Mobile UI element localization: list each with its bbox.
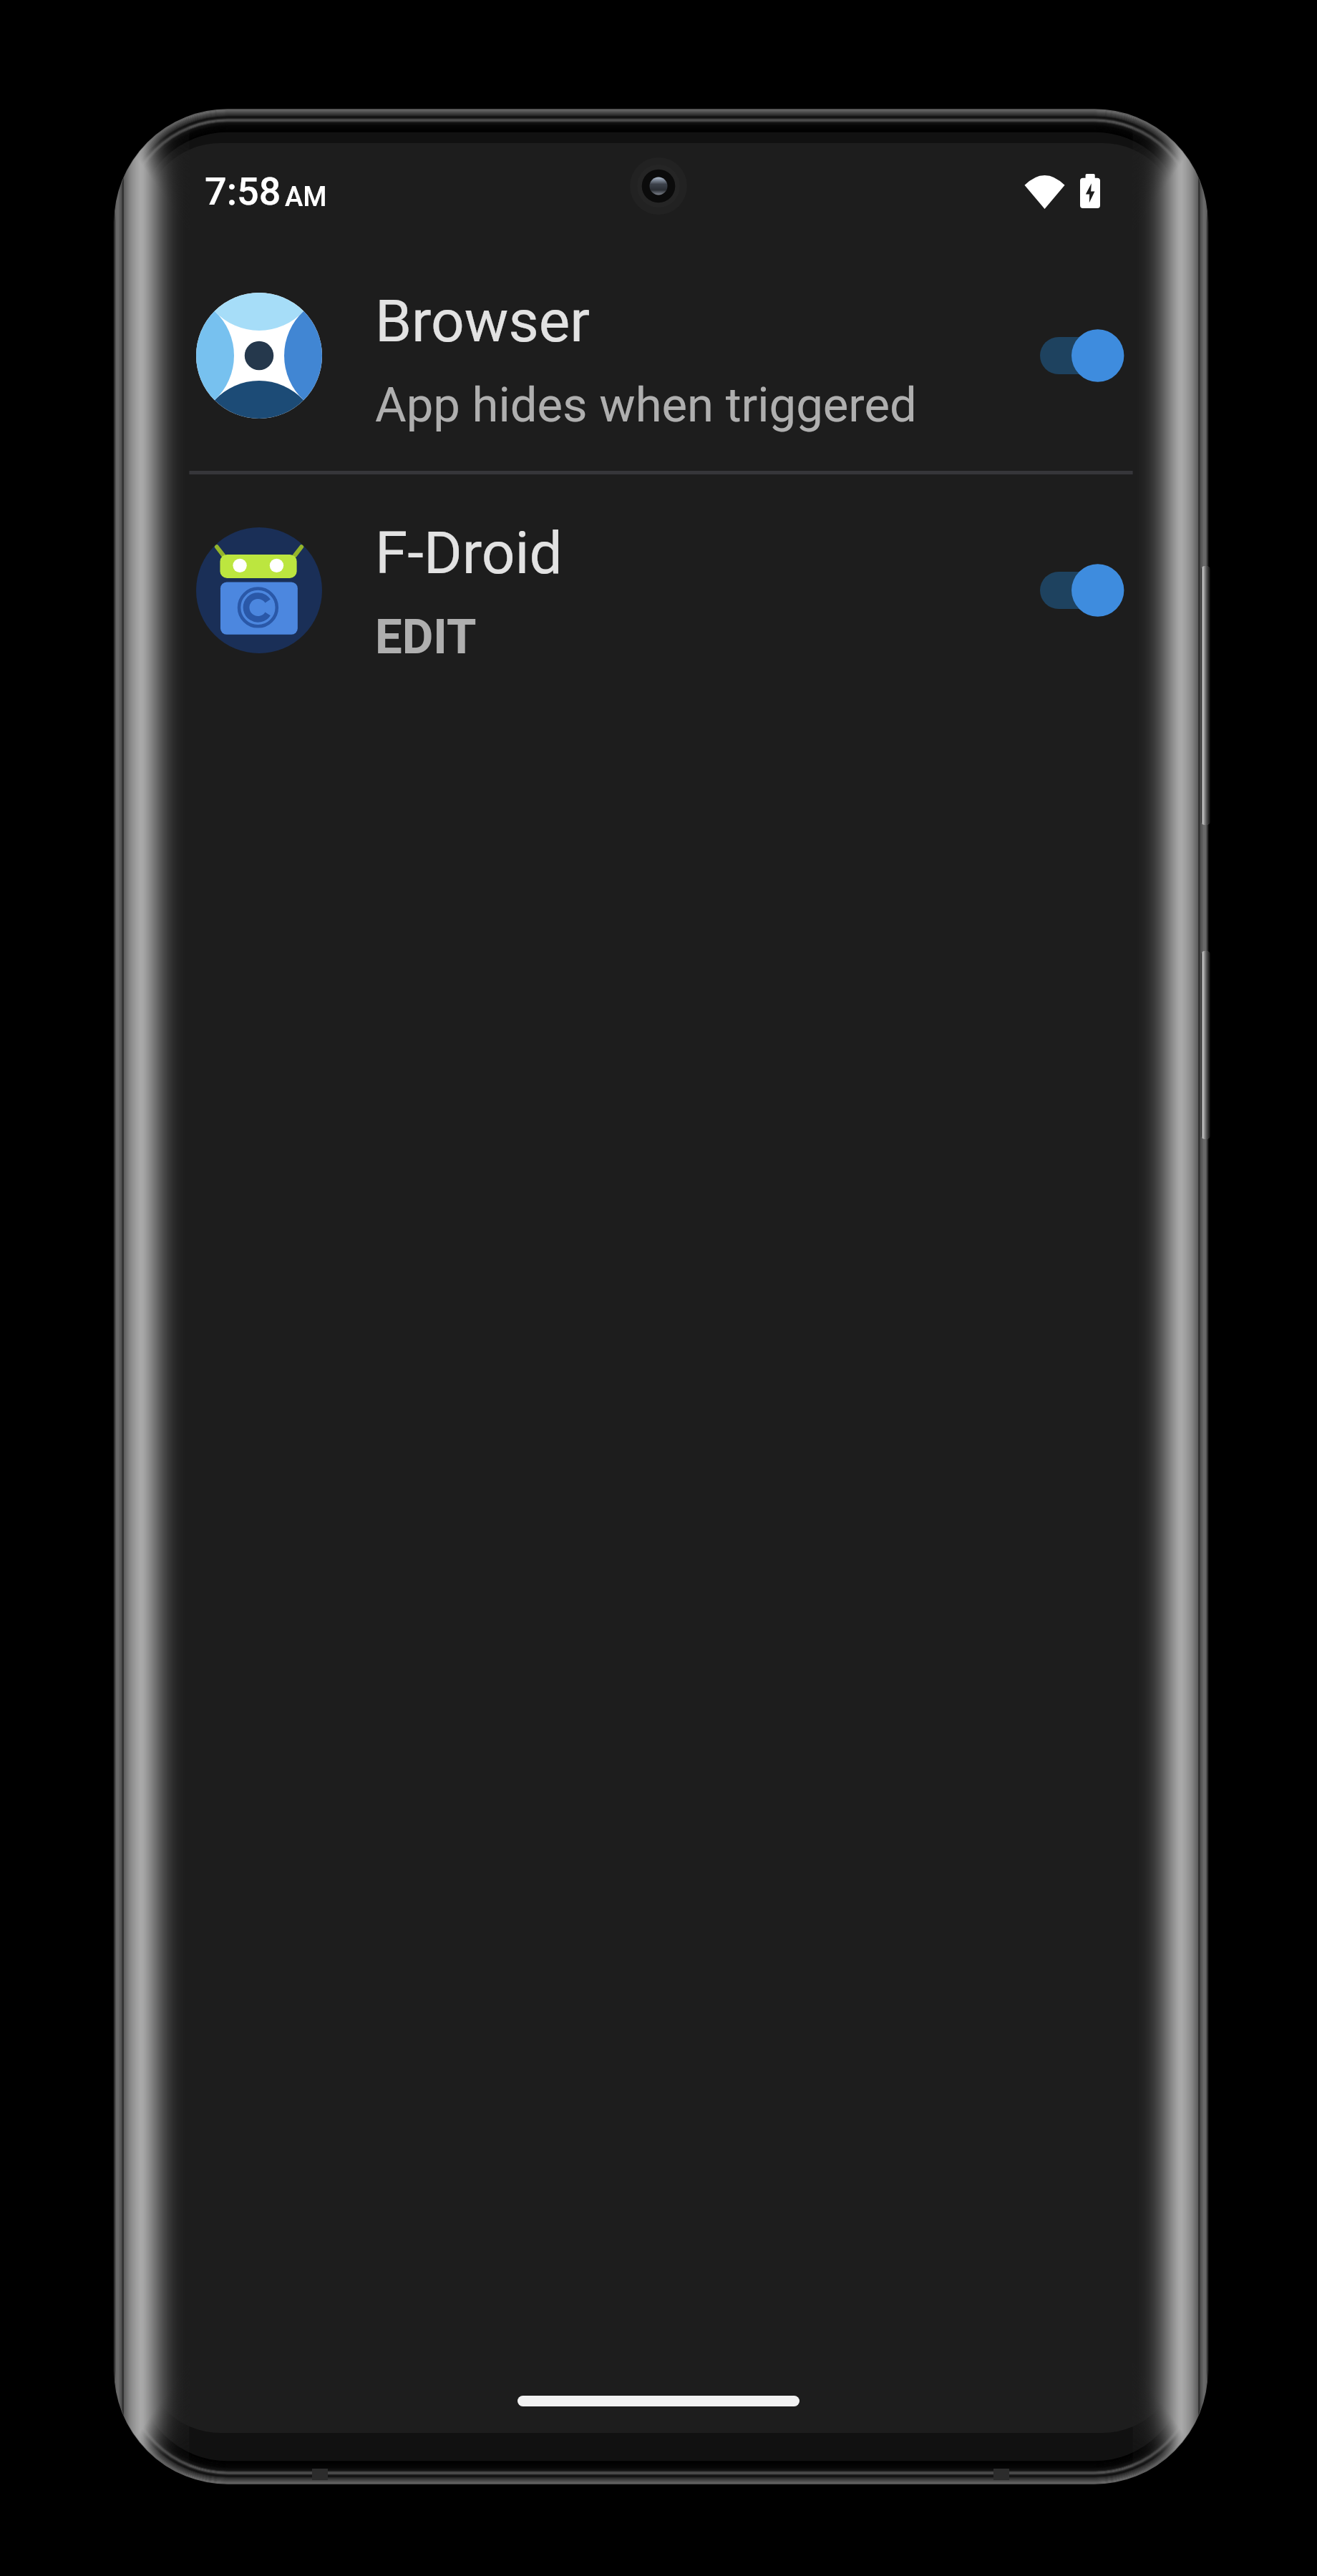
staticText: App hides when triggered	[375, 377, 917, 434]
button[interactable]: Home	[517, 2396, 800, 2406]
staticText: EDIT	[375, 609, 477, 665]
staticText: Browser	[375, 287, 591, 356]
button[interactable]: F-Droid	[143, 474, 1180, 706]
button[interactable]: Browser	[143, 240, 1180, 471]
button[interactable]: Toggle	[1040, 544, 1137, 637]
staticText: 7:58	[205, 169, 281, 214]
staticText: F-Droid	[375, 519, 563, 587]
button[interactable]: Toggle	[1040, 309, 1137, 402]
staticText: AM	[285, 181, 327, 213]
